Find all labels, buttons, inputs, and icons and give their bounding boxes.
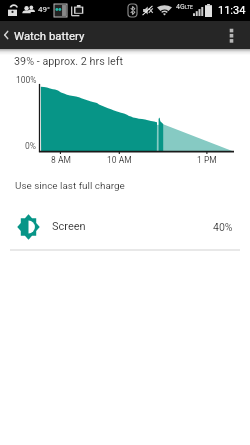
staticText: LTE [185,4,193,10]
staticText: 0% [25,141,37,151]
button[interactable]: Screen [0,203,250,250]
staticText: 8 AM [51,155,71,165]
staticText: Watch battery [14,29,85,42]
staticText: 11:34 [218,4,246,17]
staticText: 100% [16,75,37,85]
staticText: Screen [52,220,86,233]
staticText: 49° [38,5,50,14]
staticText: 39% - approx. 2 hrs left [14,55,124,68]
staticText: 1 PM [197,155,217,165]
staticText: 40% [213,221,233,233]
button[interactable]: Watch battery [0,21,85,49]
staticText: Use since last full charge [15,180,125,192]
staticText: 10 AM [107,155,132,165]
staticText: 4G [176,3,185,11]
button[interactable]: More options [217,21,245,49]
